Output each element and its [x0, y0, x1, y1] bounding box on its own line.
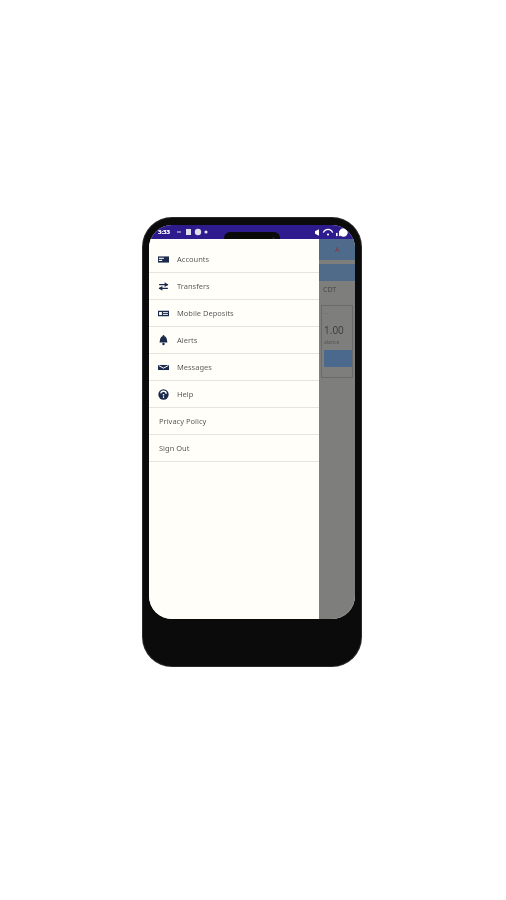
staticText: Mobile Deposits	[177, 308, 234, 318]
staticText: CDT	[323, 285, 337, 295]
staticText: alance	[324, 339, 340, 346]
staticText: Accounts	[177, 254, 210, 264]
button[interactable]: Accounts	[149, 246, 319, 272]
button[interactable]: Messages	[149, 354, 319, 380]
button[interactable]: Transfers	[149, 273, 319, 299]
staticText: 1.00	[324, 323, 344, 337]
staticText: Privacy Policy	[159, 416, 207, 426]
staticText: Messages	[177, 362, 212, 372]
staticText: Transfers	[177, 281, 210, 291]
staticText: Alerts	[177, 335, 198, 345]
staticText: 3:33	[158, 228, 170, 236]
button[interactable]: Help	[149, 381, 319, 407]
button[interactable]: Alerts	[149, 327, 319, 353]
staticText: A	[335, 245, 340, 255]
button[interactable]: Mobile Deposits	[149, 300, 319, 326]
staticText: ···	[324, 310, 329, 317]
staticText: Help	[177, 389, 194, 399]
staticText: Sign Out	[159, 443, 190, 453]
button[interactable]: Sign Out	[149, 435, 319, 461]
button[interactable]: Privacy Policy	[149, 408, 319, 434]
